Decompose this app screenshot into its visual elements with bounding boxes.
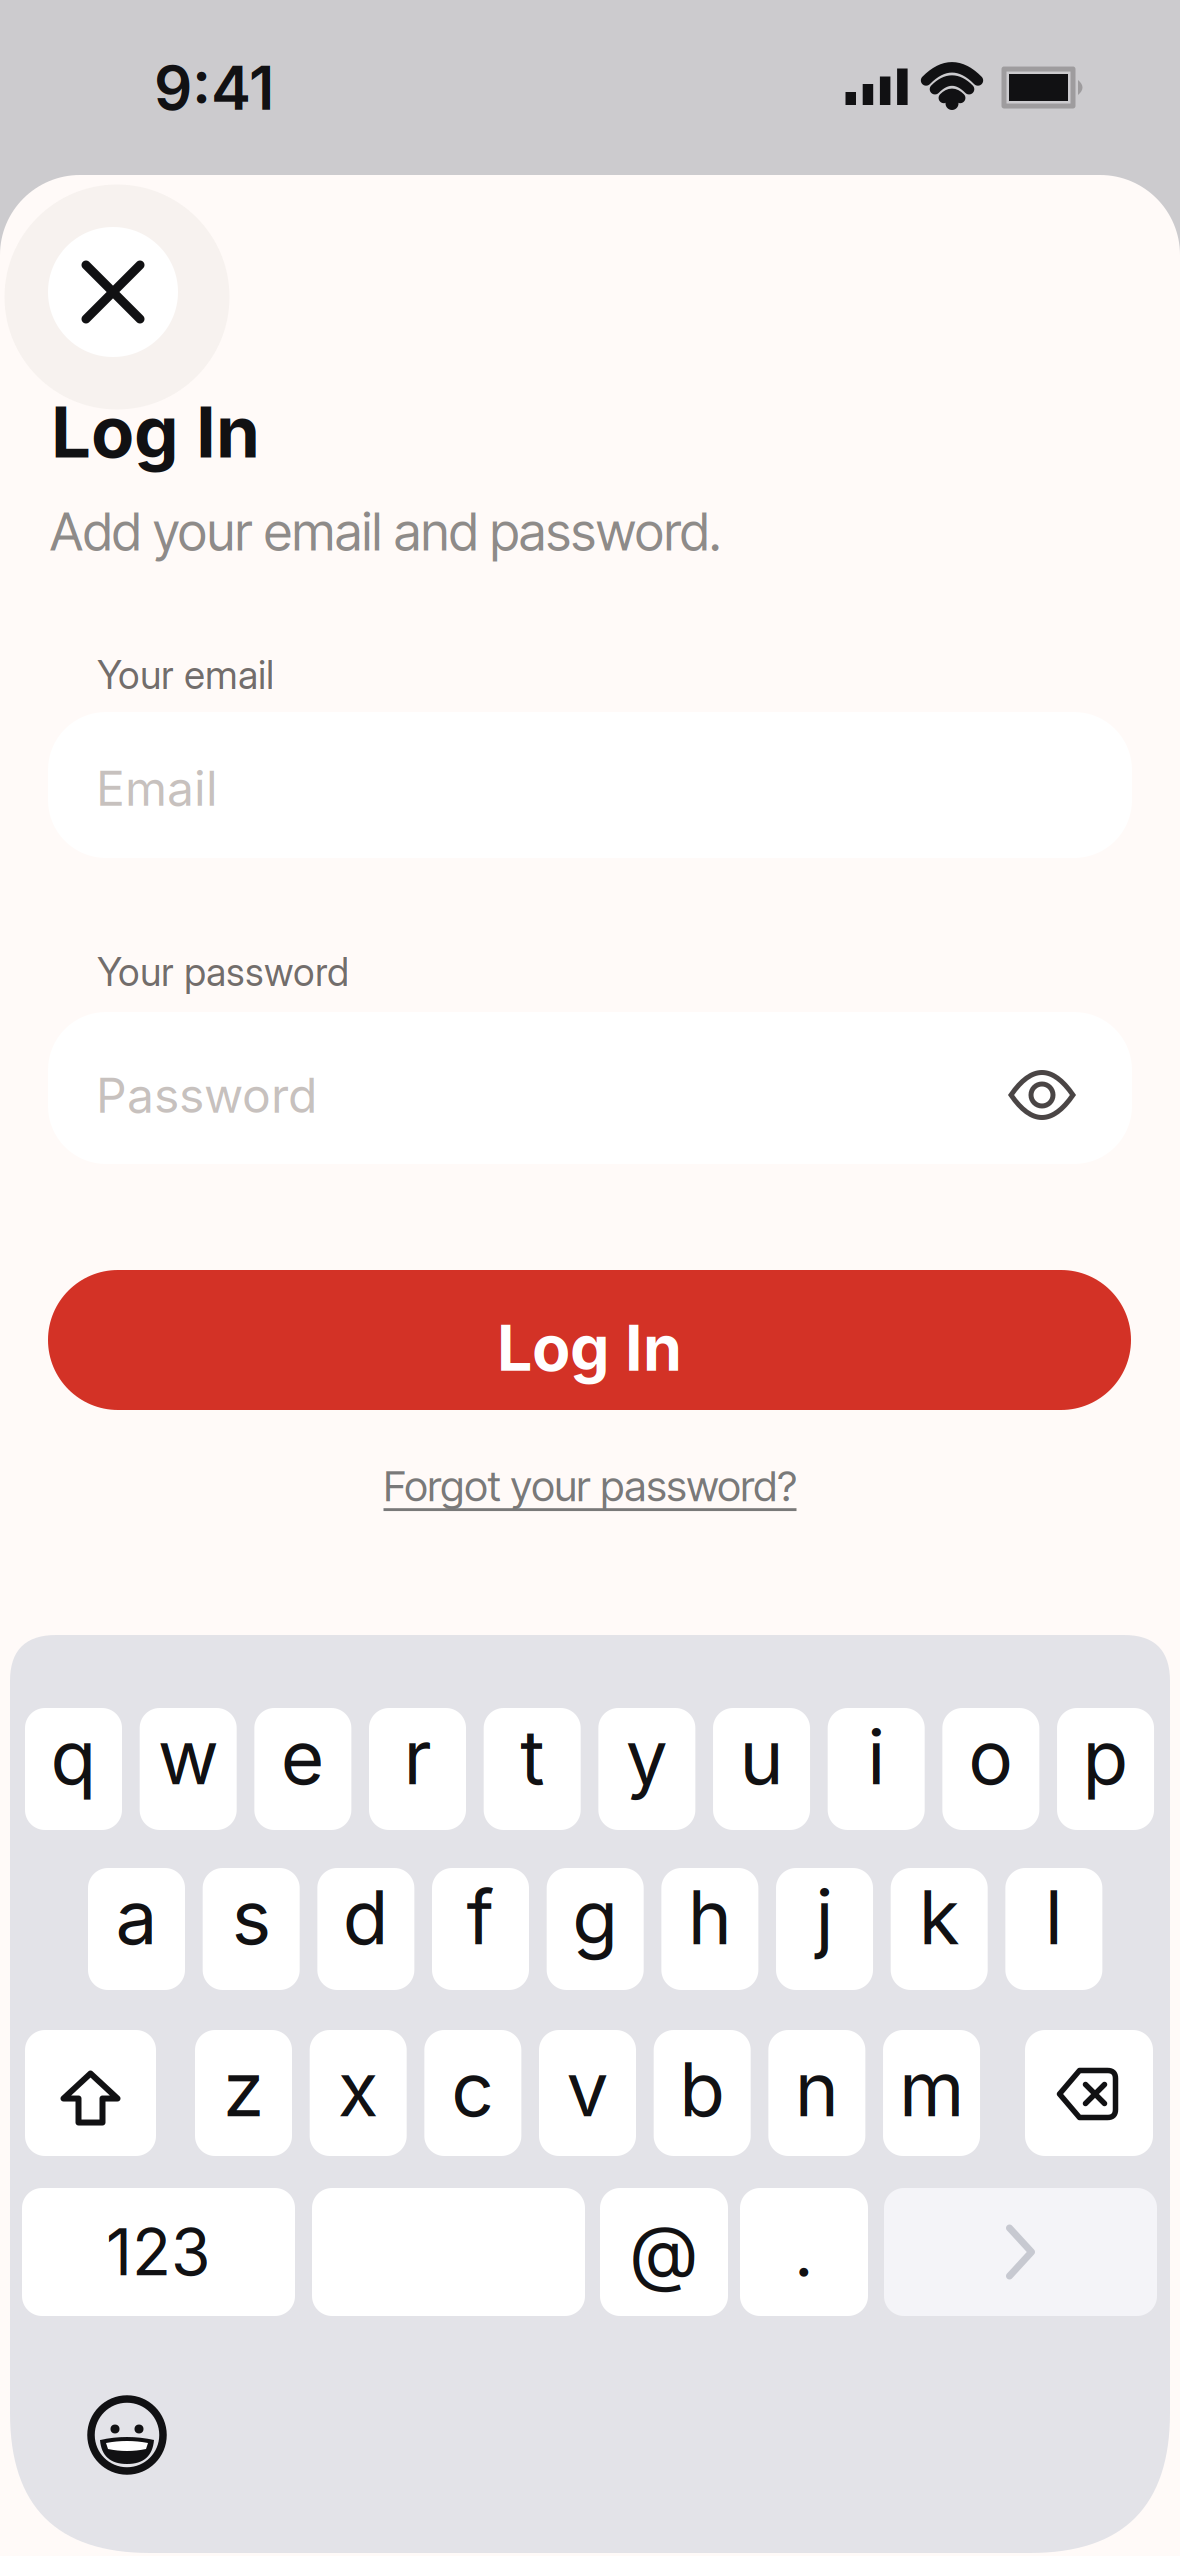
staticText: Email (96, 760, 218, 817)
staticText: i (867, 1713, 885, 1801)
staticText: p (1082, 1713, 1128, 1801)
staticText: . (794, 2212, 814, 2292)
button[interactable]: o (942, 1708, 1039, 1830)
button[interactable]: v (539, 2030, 636, 2156)
button[interactable]: Emoji (87, 2395, 167, 2475)
button[interactable]: Forgot your password? (383, 1461, 796, 1511)
button[interactable]: q (25, 1708, 122, 1830)
button[interactable]: e (254, 1708, 351, 1830)
staticText: g (572, 1873, 618, 1961)
staticText: Password (96, 1067, 317, 1124)
button[interactable]: x (310, 2030, 407, 2156)
button[interactable]: w (140, 1708, 237, 1830)
button[interactable]: Shift (25, 2030, 156, 2156)
staticText: s (232, 1873, 271, 1961)
staticText: @ (629, 2209, 699, 2294)
staticText: m (899, 2045, 964, 2133)
staticText: Your password (97, 949, 349, 995)
staticText: z (223, 2045, 264, 2133)
staticText: t (520, 1713, 544, 1801)
button[interactable]: a (88, 1868, 185, 1990)
staticText: n (795, 2045, 839, 2133)
button[interactable]: c (424, 2030, 521, 2156)
button[interactable]: . (740, 2188, 868, 2316)
staticText: u (739, 1713, 783, 1801)
button[interactable]: r (369, 1708, 466, 1830)
button[interactable]: Delete (1025, 2030, 1153, 2156)
button[interactable]: 123 (22, 2188, 295, 2316)
staticText: j (815, 1873, 833, 1961)
button[interactable]: k (891, 1868, 988, 1990)
button[interactable]: f (432, 1868, 529, 1990)
button[interactable]: Log In (48, 1270, 1131, 1410)
staticText: Log In (497, 1311, 682, 1385)
staticText: k (919, 1873, 960, 1961)
button[interactable]: t (484, 1708, 581, 1830)
button[interactable]: z (195, 2030, 292, 2156)
staticText: y (626, 1713, 668, 1801)
staticText: b (679, 2045, 725, 2133)
button[interactable]: Password (48, 1012, 1132, 1164)
staticText: e (281, 1713, 325, 1801)
staticText: 123 (106, 2214, 211, 2290)
staticText: w (158, 1713, 219, 1801)
staticText: c (451, 2045, 494, 2133)
staticText: d (343, 1873, 389, 1961)
button[interactable]: p (1057, 1708, 1154, 1830)
button[interactable]: g (547, 1868, 644, 1990)
staticText: Your email (97, 652, 274, 698)
button[interactable]: Close (48, 227, 178, 357)
staticText: h (688, 1873, 732, 1961)
button[interactable]: @ (600, 2188, 728, 2316)
button[interactable]: i (828, 1708, 925, 1830)
staticText: x (338, 2045, 379, 2133)
button[interactable]: y (598, 1708, 695, 1830)
staticText: r (403, 1713, 431, 1801)
button[interactable]: Email (48, 712, 1132, 858)
button[interactable]: j (776, 1868, 873, 1990)
staticText: a (115, 1873, 157, 1961)
staticText: 9:41 (154, 53, 274, 123)
button[interactable]: b (654, 2030, 751, 2156)
button[interactable]: Return (884, 2188, 1157, 2316)
staticText: q (50, 1713, 96, 1801)
button[interactable]: m (883, 2030, 980, 2156)
button[interactable]: s (203, 1868, 300, 1990)
staticText: Log In (51, 390, 260, 473)
button[interactable]: u (713, 1708, 810, 1830)
button[interactable]: l (1005, 1868, 1102, 1990)
button[interactable]: d (317, 1868, 414, 1990)
button[interactable]: n (768, 2030, 865, 2156)
staticText: v (566, 2045, 608, 2133)
staticText: o (968, 1713, 1013, 1801)
staticText: f (466, 1873, 494, 1961)
staticText: Forgot your password? (383, 1461, 796, 1511)
button[interactable]: h (661, 1868, 758, 1990)
staticText: Add your email and password. (50, 500, 721, 563)
staticText: l (1045, 1873, 1063, 1961)
